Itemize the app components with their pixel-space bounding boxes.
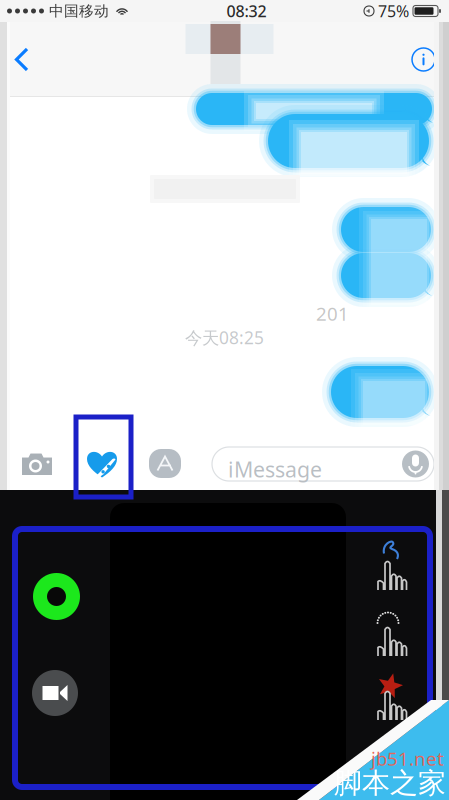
- staticText: 今天08:25: [185, 326, 264, 349]
- button[interactable]: Details: [398, 35, 449, 84]
- button[interactable]: App Store: [142, 437, 188, 490]
- button[interactable]: Record video: [32, 670, 78, 716]
- staticText: iMessage: [228, 455, 322, 483]
- button[interactable]: Back: [0, 34, 43, 84]
- staticText: jb51.net: [371, 746, 444, 771]
- staticText: 201: [316, 301, 349, 326]
- staticText: 08:32: [226, 0, 266, 22]
- staticText: 中国移动: [49, 2, 109, 20]
- staticText: 75%: [378, 0, 409, 22]
- staticText: 脚本之家: [334, 766, 446, 800]
- button[interactable]: iMessage: [212, 447, 434, 481]
- button[interactable]: Camera: [14, 437, 60, 490]
- button[interactable]: Ink colour green: [33, 573, 80, 620]
- button[interactable]: Digital Touch: [79, 437, 125, 490]
